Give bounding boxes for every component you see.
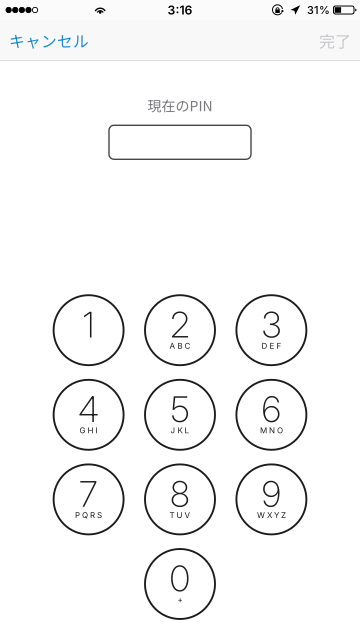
button[interactable]: 8 — [145, 464, 215, 534]
staticText: 3:16 — [167, 3, 192, 17]
staticText: T U V — [169, 510, 190, 520]
button[interactable]: 2 — [145, 295, 215, 365]
staticText: 完了 — [319, 29, 351, 52]
staticText: 3 — [261, 303, 281, 346]
staticText: + — [177, 595, 182, 604]
staticText: 9 — [261, 472, 281, 515]
button[interactable]: 9 — [236, 464, 306, 534]
staticText: 8 — [170, 472, 190, 515]
staticText: 4 — [78, 388, 99, 431]
button[interactable]: 0 — [145, 549, 215, 619]
button[interactable]: 3 — [236, 295, 306, 365]
button[interactable]: 6 — [236, 380, 306, 450]
button[interactable]: 5 — [145, 380, 215, 450]
button[interactable]: 4 — [54, 380, 124, 450]
staticText: 0 — [169, 557, 190, 600]
staticText: W X Y Z — [257, 510, 286, 520]
staticText: G H I — [80, 426, 98, 435]
staticText: 2 — [170, 303, 190, 346]
staticText: キャンセル — [9, 29, 89, 52]
button[interactable]: 7 — [54, 464, 124, 534]
staticText: 31% — [307, 3, 330, 17]
staticText: D E F — [261, 341, 281, 351]
staticText: M N O — [260, 426, 283, 435]
staticText: 1 — [83, 303, 95, 346]
staticText: 7 — [79, 472, 98, 515]
button[interactable]: 1 — [54, 295, 124, 365]
staticText: 6 — [261, 388, 281, 431]
staticText: P Q R S — [75, 510, 102, 520]
button[interactable]: キャンセル — [0, 19, 101, 62]
staticText: A B C — [169, 341, 190, 351]
staticText: J K L — [170, 426, 189, 435]
staticText: 5 — [170, 388, 189, 431]
button[interactable]: 完了 — [307, 19, 360, 62]
staticText: 現在のPIN — [147, 95, 212, 115]
